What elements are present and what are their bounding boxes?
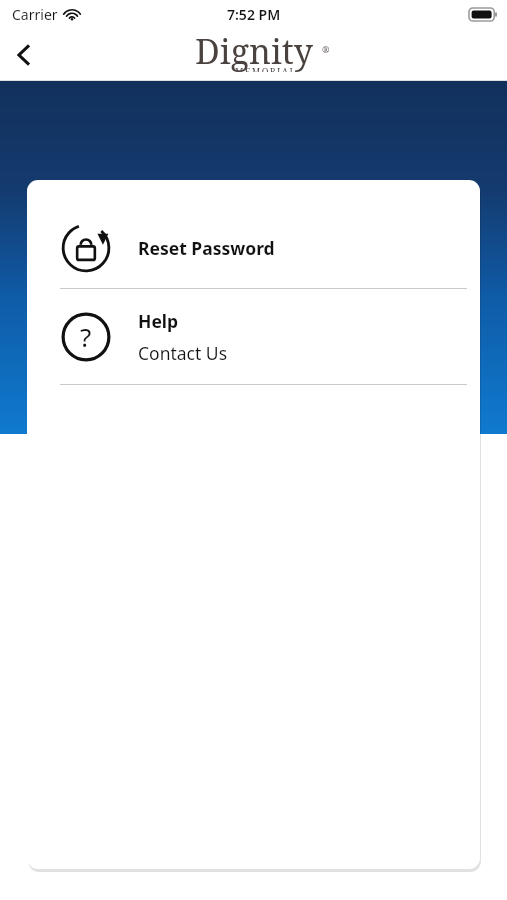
other: Reset Password [60, 222, 112, 274]
staticText: Contact Us [138, 341, 228, 365]
staticText: Help [138, 309, 179, 333]
staticText: Dignity [195, 28, 313, 74]
staticText: 7:52 PM [227, 5, 281, 24]
button[interactable]: Help [27, 289, 480, 384]
other: Help [60, 311, 112, 363]
staticText: MEMORIAL [235, 65, 297, 72]
staticText: Carrier [12, 5, 58, 24]
button[interactable]: Back [0, 31, 48, 79]
staticText: Reset Password [138, 236, 275, 260]
staticText: ? [80, 319, 92, 354]
staticText: ® [322, 43, 330, 55]
button[interactable]: Reset Password [27, 208, 480, 288]
